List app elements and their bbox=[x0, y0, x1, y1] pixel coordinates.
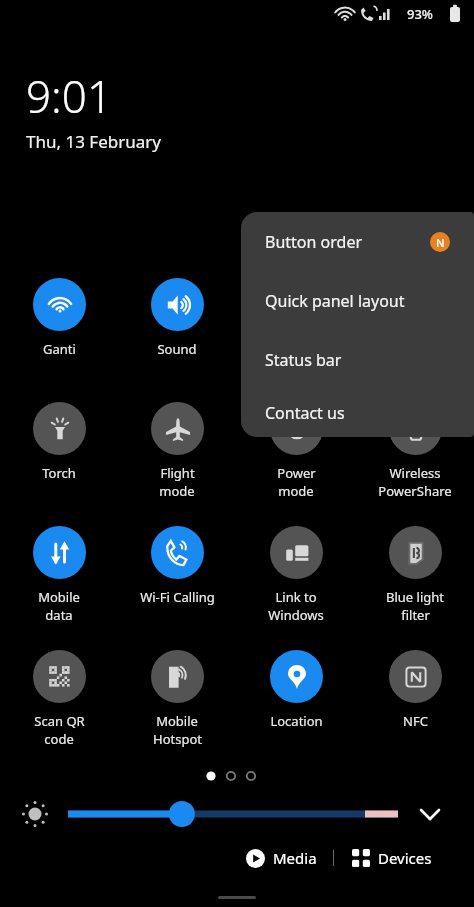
staticText: mode bbox=[159, 482, 195, 500]
button[interactable]: Contact us bbox=[241, 389, 474, 437]
staticText: Windows bbox=[268, 606, 324, 624]
button[interactable]: Flight bbox=[125, 395, 229, 500]
button[interactable]: Status bar bbox=[241, 330, 474, 389]
button[interactable] bbox=[0, 793, 474, 835]
staticText: Media bbox=[273, 848, 317, 868]
button[interactable]: Devices bbox=[346, 848, 438, 868]
staticText: Button order bbox=[265, 231, 363, 253]
staticText: Torch bbox=[42, 464, 76, 482]
button[interactable]: Button order bbox=[241, 212, 474, 271]
staticText: Scan QR bbox=[34, 712, 85, 730]
staticText: mode bbox=[278, 482, 314, 500]
staticText: filter bbox=[401, 606, 430, 624]
button[interactable]: Sound bbox=[125, 271, 229, 358]
staticText: Flight bbox=[160, 464, 195, 482]
button[interactable]: Link to bbox=[244, 519, 348, 624]
staticText: NFC bbox=[403, 712, 428, 730]
staticText: Wireless bbox=[389, 464, 441, 482]
staticText: Thu, 13 February bbox=[26, 130, 161, 153]
staticText: Devices bbox=[378, 848, 432, 868]
staticText: Wi-Fi Calling bbox=[140, 588, 215, 606]
staticText: 93% bbox=[407, 5, 433, 23]
staticText: Mobile bbox=[38, 588, 80, 606]
button[interactable]: Torch bbox=[7, 395, 111, 482]
button[interactable]: Media bbox=[240, 848, 323, 868]
staticText: 9:01 bbox=[26, 66, 113, 126]
button[interactable]: Blue light bbox=[363, 519, 467, 624]
button[interactable]: Ganti bbox=[7, 271, 111, 358]
staticText: Sound bbox=[157, 340, 197, 358]
staticText: Mobile bbox=[156, 712, 198, 730]
button[interactable]: Scan QR bbox=[7, 643, 111, 748]
staticText: Ganti bbox=[43, 340, 76, 358]
staticText: Contact us bbox=[265, 402, 345, 424]
button[interactable]: Location bbox=[244, 643, 348, 730]
staticText: Location bbox=[270, 712, 323, 730]
button[interactable]: Wireless bbox=[363, 395, 467, 500]
button[interactable]: Mobile bbox=[7, 519, 111, 624]
button[interactable]: NFC bbox=[363, 643, 467, 730]
staticText: Blue light bbox=[386, 588, 444, 606]
button[interactable]: Wi-Fi Calling bbox=[125, 519, 229, 606]
button[interactable]: Mobile bbox=[125, 643, 229, 748]
staticText: PowerShare bbox=[378, 482, 452, 500]
staticText: Status bar bbox=[265, 349, 342, 371]
button[interactable]: Quick panel layout bbox=[241, 271, 474, 330]
staticText: Hotspot bbox=[153, 730, 202, 748]
staticText: Power bbox=[277, 464, 316, 482]
staticText: data bbox=[45, 606, 73, 624]
staticText: N bbox=[436, 235, 445, 250]
button[interactable]: Power bbox=[244, 395, 348, 500]
staticText: code bbox=[44, 730, 74, 748]
staticText: Link to bbox=[275, 588, 317, 606]
staticText: Quick panel layout bbox=[265, 290, 405, 312]
